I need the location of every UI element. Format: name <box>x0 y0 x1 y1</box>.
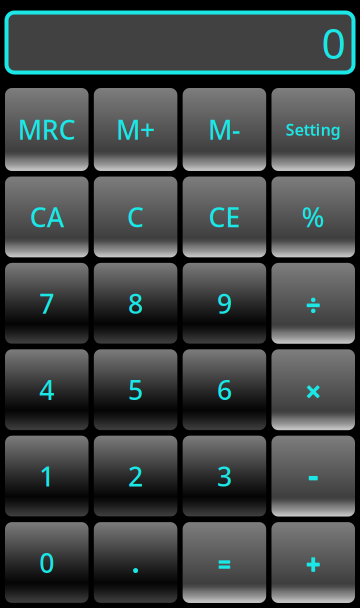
staticText: CA <box>30 199 64 235</box>
button[interactable]: M- <box>183 88 266 171</box>
button[interactable]: Multiply <box>271 349 355 430</box>
button[interactable]: 4 <box>5 349 88 430</box>
button[interactable]: CE <box>183 176 266 257</box>
staticText: C <box>127 199 144 235</box>
staticText: 6 <box>217 372 232 407</box>
button[interactable]: 1 <box>5 436 88 517</box>
staticText: 3 <box>217 458 232 494</box>
button[interactable]: 8 <box>94 263 177 344</box>
button[interactable]: Divide <box>271 263 355 344</box>
staticText: 9 <box>217 286 232 321</box>
button[interactable]: 0 <box>5 522 88 603</box>
staticText: 7 <box>39 286 54 321</box>
button[interactable]: 2 <box>94 436 177 517</box>
staticText: CE <box>208 199 240 235</box>
button[interactable]: C <box>94 176 177 257</box>
button[interactable]: Decimal point <box>94 522 177 603</box>
button[interactable]: 6 <box>183 349 266 430</box>
staticText: M- <box>208 112 241 147</box>
button[interactable]: 5 <box>94 349 177 430</box>
staticText: Setting <box>286 119 341 140</box>
staticText: 0 <box>321 14 345 71</box>
staticText: MRC <box>18 112 76 147</box>
staticText: 0 <box>39 545 54 580</box>
button[interactable]: 9 <box>183 263 266 344</box>
staticText: 4 <box>39 372 54 407</box>
button[interactable]: 7 <box>5 263 88 344</box>
staticText: 1 <box>39 458 54 494</box>
button[interactable]: MRC <box>5 88 88 171</box>
button[interactable]: Minus <box>271 436 355 517</box>
staticText: % <box>302 199 325 235</box>
button[interactable]: Equals <box>183 522 266 603</box>
button[interactable]: M+ <box>94 88 177 171</box>
button[interactable]: Setting <box>271 88 355 171</box>
staticText: 8 <box>128 286 143 321</box>
staticText: 5 <box>128 372 143 407</box>
staticText: M+ <box>116 112 155 147</box>
button[interactable]: 3 <box>183 436 266 517</box>
button[interactable]: Plus <box>271 522 355 603</box>
button[interactable]: CA <box>5 176 88 257</box>
staticText: 2 <box>128 458 143 494</box>
button[interactable]: % <box>271 176 355 257</box>
